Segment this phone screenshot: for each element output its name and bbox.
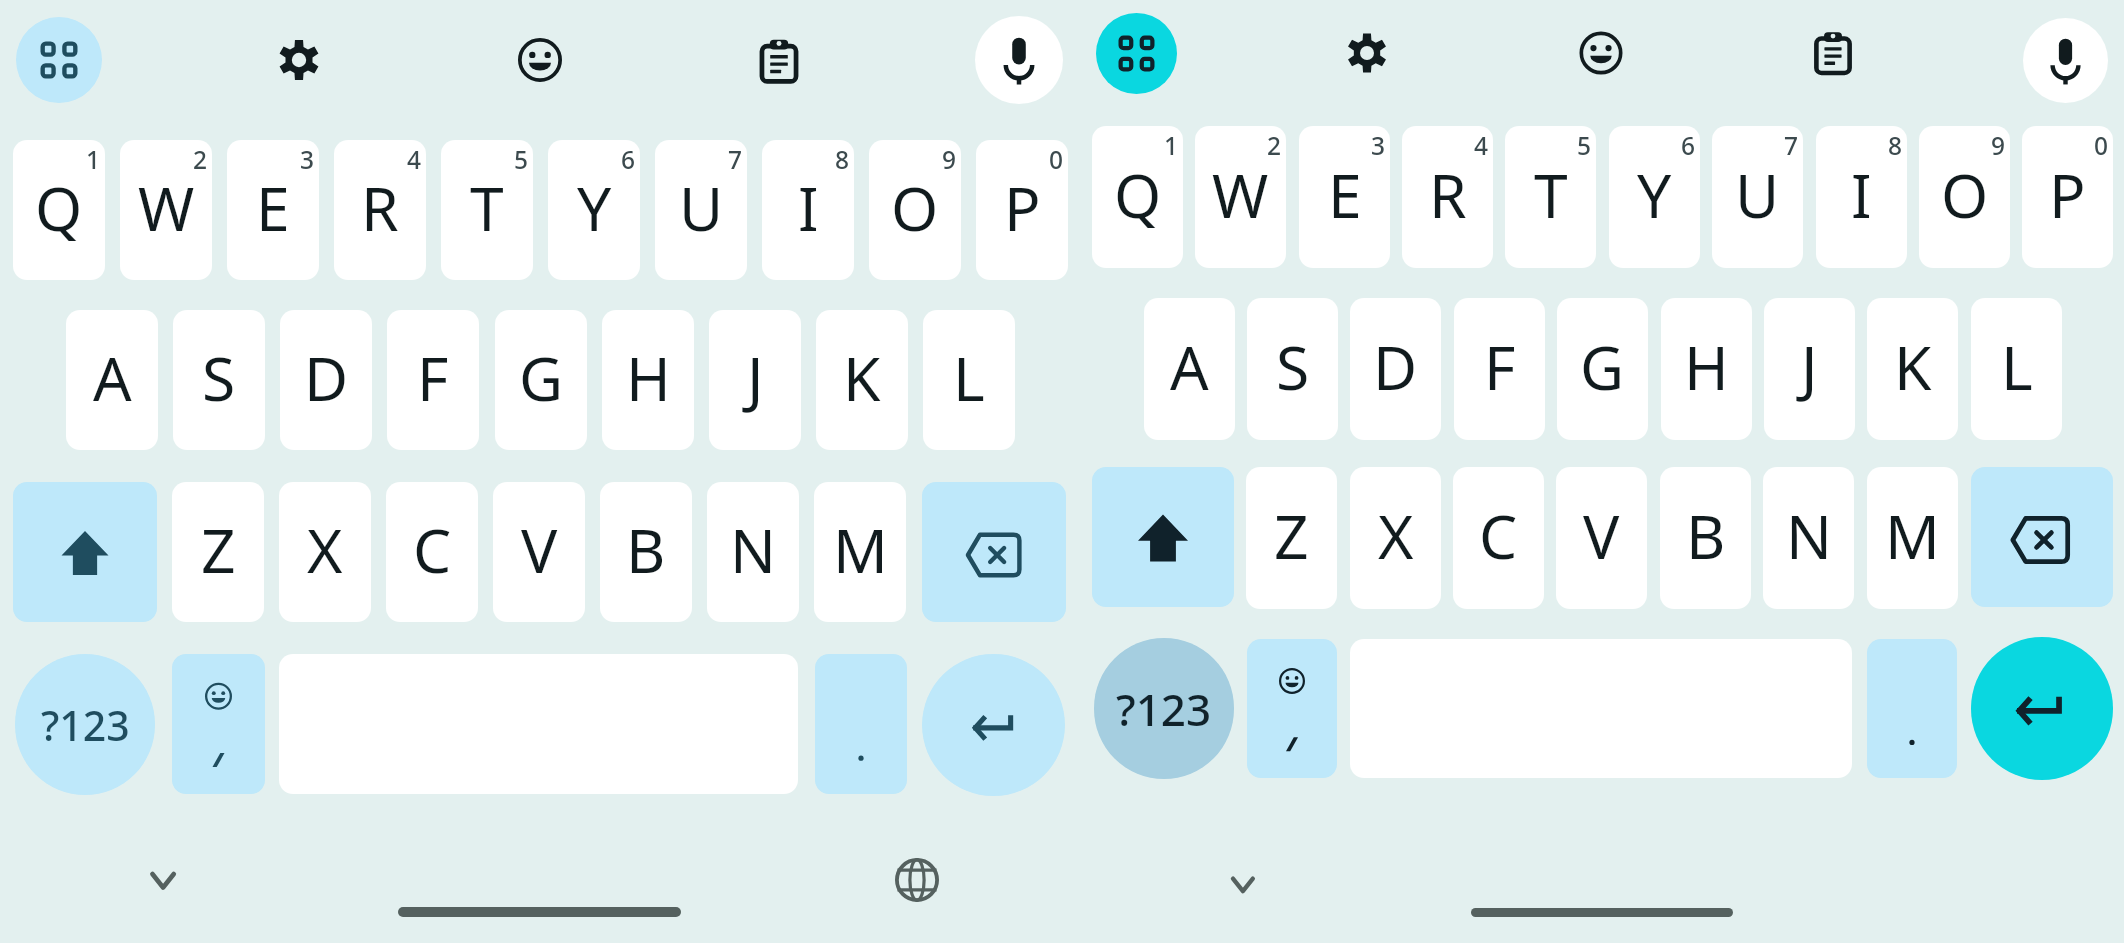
button[interactable]: V <box>1556 467 1647 609</box>
staticText: B <box>1686 494 1726 576</box>
button[interactable]: Voice input <box>2023 18 2108 103</box>
button[interactable]: Emoji and comma <box>172 654 265 794</box>
button[interactable]: Hide keyboard <box>133 850 193 910</box>
button[interactable]: E <box>227 140 319 280</box>
button[interactable]: A <box>1144 298 1235 440</box>
button[interactable]: W <box>1195 126 1286 268</box>
button[interactable]: Z <box>1246 467 1337 609</box>
button[interactable]: Q <box>13 140 105 280</box>
button[interactable]: Enter <box>922 654 1065 796</box>
button[interactable]: ?123 <box>15 654 155 795</box>
button[interactable]: J <box>709 310 801 450</box>
button[interactable]: Q <box>1092 126 1183 268</box>
staticText: G <box>519 336 564 418</box>
button[interactable]: Voice input <box>975 16 1063 104</box>
button[interactable]: P <box>976 140 1068 280</box>
button[interactable]: N <box>707 482 799 622</box>
button[interactable]: R <box>334 140 426 280</box>
button[interactable]: U <box>1712 126 1803 268</box>
staticText: 1 <box>86 143 101 176</box>
button[interactable]: F <box>387 310 479 450</box>
button[interactable]: ?123 <box>1094 638 1234 779</box>
staticText: R <box>361 166 399 248</box>
button[interactable]: X <box>1350 467 1441 609</box>
button[interactable]: Clipboard <box>749 32 809 92</box>
button[interactable]: T <box>1505 126 1596 268</box>
staticText: 5 <box>514 143 529 176</box>
button[interactable]: F <box>1454 298 1545 440</box>
button[interactable]: T <box>441 140 533 280</box>
button[interactable]: C <box>386 482 478 622</box>
button[interactable]: Settings <box>269 30 329 90</box>
staticText: 5 <box>1577 129 1592 162</box>
staticText: Y <box>577 166 612 248</box>
staticText: X <box>307 508 343 590</box>
button[interactable]: Keyboard layouts <box>16 17 102 103</box>
staticText: D <box>304 336 349 418</box>
button[interactable]: X <box>279 482 371 622</box>
button[interactable]: D <box>280 310 372 450</box>
button[interactable]: G <box>495 310 587 450</box>
button[interactable]: Period <box>1867 639 1957 778</box>
button[interactable]: P <box>2022 126 2113 268</box>
staticText: ?123 <box>41 697 130 753</box>
button[interactable]: W <box>120 140 212 280</box>
staticText: N <box>1786 494 1832 576</box>
button[interactable]: G <box>1557 298 1648 440</box>
button[interactable]: B <box>1660 467 1751 609</box>
button[interactable]: M <box>1867 467 1958 609</box>
button[interactable]: L <box>1971 298 2062 440</box>
button[interactable]: H <box>602 310 694 450</box>
staticText: 1 <box>1164 129 1179 162</box>
button[interactable]: Emoji and comma <box>1247 639 1337 778</box>
button[interactable]: R <box>1402 126 1493 268</box>
staticText: O <box>891 166 939 248</box>
button[interactable]: A <box>66 310 158 450</box>
staticText: A <box>93 336 132 418</box>
button[interactable]: M <box>814 482 906 622</box>
button[interactable]: K <box>1867 298 1958 440</box>
button[interactable]: Shift <box>1092 467 1234 607</box>
button[interactable]: Z <box>172 482 264 622</box>
button[interactable]: S <box>1247 298 1338 440</box>
button[interactable]: I <box>762 140 854 280</box>
button[interactable]: Enter <box>1971 637 2113 780</box>
button[interactable]: N <box>1763 467 1854 609</box>
staticText: K <box>1894 325 1932 407</box>
button[interactable]: Change language <box>888 851 946 909</box>
button[interactable]: S <box>173 310 265 450</box>
staticText: P <box>2049 153 2086 235</box>
button[interactable]: K <box>816 310 908 450</box>
button[interactable]: U <box>655 140 747 280</box>
button[interactable]: O <box>869 140 961 280</box>
button[interactable]: Clipboard <box>1804 25 1862 83</box>
button[interactable]: D <box>1350 298 1441 440</box>
button[interactable]: Keyboard layouts <box>1096 13 1177 94</box>
button[interactable]: Emoji <box>1572 24 1630 82</box>
button[interactable]: H <box>1661 298 1752 440</box>
button[interactable]: L <box>923 310 1015 450</box>
button[interactable]: Y <box>548 140 640 280</box>
button[interactable]: J <box>1764 298 1855 440</box>
button[interactable]: B <box>600 482 692 622</box>
button[interactable]: C <box>1453 467 1544 609</box>
button[interactable]: O <box>1919 126 2010 268</box>
button[interactable]: V <box>493 482 585 622</box>
button[interactable]: Emoji <box>510 30 570 90</box>
button[interactable]: I <box>1816 126 1907 268</box>
button[interactable]: Backspace <box>922 482 1066 622</box>
staticText: J <box>1801 325 1818 407</box>
button[interactable]: Y <box>1609 126 1700 268</box>
staticText: B <box>626 508 666 590</box>
button[interactable]: Period <box>815 654 907 794</box>
staticText: Z <box>201 508 236 590</box>
button[interactable]: E <box>1299 126 1390 268</box>
staticText: 0 <box>1049 143 1064 176</box>
staticText: C <box>413 508 452 590</box>
button[interactable]: Hide keyboard <box>1212 850 1272 910</box>
button[interactable]: Shift <box>13 482 157 622</box>
button[interactable]: Settings <box>1338 24 1396 82</box>
button[interactable]: Backspace <box>1971 467 2113 607</box>
